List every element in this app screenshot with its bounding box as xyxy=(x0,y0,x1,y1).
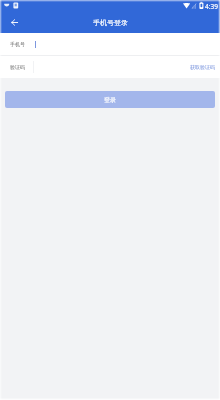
button[interactable]: 登录 xyxy=(5,91,215,108)
button[interactable]: 手机号 xyxy=(0,33,220,55)
button[interactable]: 获取验证码 xyxy=(184,60,220,74)
staticText: 登录 xyxy=(104,96,116,104)
staticText: 4:39 xyxy=(205,2,218,11)
button[interactable]: Back xyxy=(0,13,28,33)
staticText: 手机号 xyxy=(10,41,25,47)
button[interactable]: 验证码 xyxy=(0,56,184,78)
staticText: 获取验证码 xyxy=(190,64,215,70)
staticText: 验证码 xyxy=(10,64,25,70)
staticText: 手机号登录 xyxy=(93,18,128,27)
